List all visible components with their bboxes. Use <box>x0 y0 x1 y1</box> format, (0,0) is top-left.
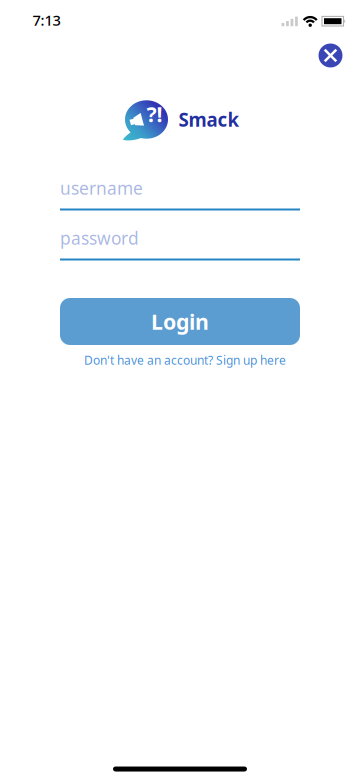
button[interactable]: Don't have an account? Sign up here <box>84 352 286 368</box>
staticText: Don't have an account? Sign up here <box>84 352 286 368</box>
staticText: ?! <box>146 100 162 128</box>
staticText: 7:13 <box>32 10 60 30</box>
button[interactable]: Login <box>60 298 300 345</box>
button[interactable]: Close <box>318 43 342 67</box>
button[interactable]: username <box>60 176 300 210</box>
staticText: Smack <box>178 107 239 132</box>
staticText: Login <box>151 307 209 336</box>
staticText: password <box>60 226 139 249</box>
button[interactable]: password <box>60 226 300 260</box>
staticText: username <box>60 176 143 199</box>
